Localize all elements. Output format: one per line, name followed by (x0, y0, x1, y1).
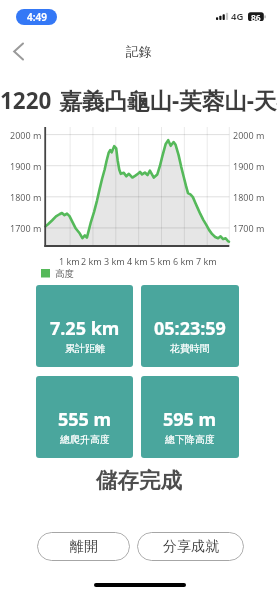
button[interactable] (8, 40, 30, 62)
button[interactable]: 05:23:59 (141, 285, 239, 367)
staticText: 1900 m (233, 160, 265, 172)
staticText: 6 km (173, 255, 194, 267)
button[interactable]: 595 m (141, 376, 239, 458)
staticText: 總下降高度 (165, 433, 215, 446)
staticText: 離開 (70, 538, 98, 556)
staticText: 2000 m (233, 129, 265, 141)
staticText: 7.25 km (50, 316, 120, 341)
staticText: 4G (231, 10, 244, 23)
staticText: 4:49 (27, 10, 47, 24)
staticText: 高度 (55, 268, 74, 280)
staticText: 1700 m (233, 222, 265, 234)
staticText: 595 m (163, 407, 217, 432)
staticText: 1 km (59, 255, 80, 267)
staticText: 1900 m (10, 160, 42, 172)
staticText: 05:23:59 (154, 316, 226, 341)
staticText: 記錄 (126, 43, 152, 59)
button[interactable]: 555 m (36, 376, 133, 458)
staticText: 4 km (127, 255, 148, 267)
staticText: 2 km (81, 255, 102, 267)
staticText: 2000 m (10, 129, 42, 141)
staticText: 86 (251, 12, 261, 22)
staticText: 累計距離 (65, 342, 105, 355)
staticText: 1800 m (10, 191, 42, 203)
staticText: 分享成就 (163, 538, 219, 556)
staticText: 555 m (58, 407, 112, 432)
staticText: 花費時間 (170, 342, 210, 355)
button[interactable]: 4:49 (16, 9, 57, 25)
button[interactable]: 離開 (37, 532, 130, 561)
staticText: 1800 m (233, 191, 265, 203)
button[interactable]: 7.25 km (36, 285, 133, 367)
staticText: 3 km (104, 255, 125, 267)
staticText: 總爬升高度 (60, 433, 110, 446)
staticText: 儲存完成 (96, 467, 182, 494)
button[interactable]: 分享成就 (137, 532, 244, 561)
staticText: 5 km (150, 255, 171, 267)
staticText: 7 km (196, 255, 217, 267)
staticText: 1700 m (10, 222, 42, 234)
staticText: 1220 嘉義凸龜山-芙蓉山-天福山 (0, 85, 277, 113)
